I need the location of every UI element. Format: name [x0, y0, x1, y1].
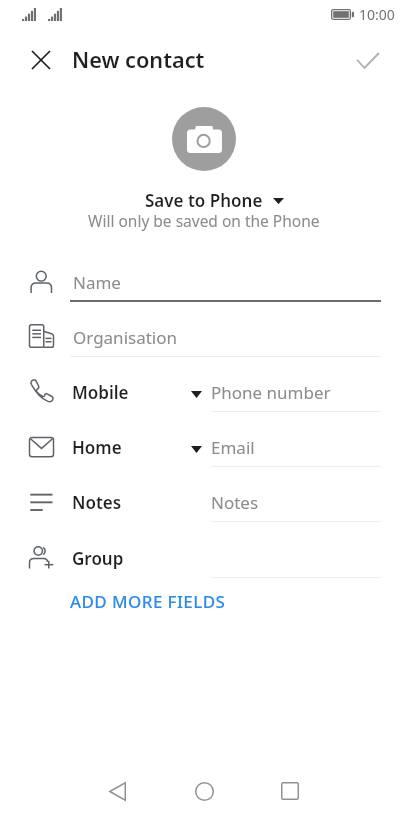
- staticText: ADD MORE FIELDS: [70, 590, 226, 613]
- staticText: Organisation: [73, 326, 178, 349]
- staticText: Email: [211, 436, 255, 459]
- button[interactable]: Recents: [264, 765, 316, 816]
- staticText: Phone number: [211, 381, 331, 404]
- staticText: Name: [73, 271, 121, 294]
- staticText: 10:00: [359, 5, 395, 24]
- button[interactable]: Name: [0, 258, 408, 302]
- button[interactable]: Home: [178, 765, 230, 816]
- button[interactable]: Home: [0, 423, 408, 467]
- staticText: Will only be saved on the Phone: [88, 210, 320, 231]
- staticText: Save to Phone: [145, 189, 263, 212]
- button[interactable]: Close: [22, 41, 60, 79]
- staticText: Notes: [211, 491, 259, 514]
- button[interactable]: Add photo: [172, 107, 236, 171]
- button[interactable]: Save to Phone: [145, 189, 284, 212]
- staticText: New contact: [72, 45, 205, 75]
- button[interactable]: Mobile: [0, 368, 408, 412]
- staticText: Home: [72, 436, 122, 459]
- button[interactable]: Group: [0, 534, 408, 578]
- staticText: Group: [72, 547, 124, 570]
- button[interactable]: Save: [349, 41, 387, 79]
- button[interactable]: Notes: [0, 478, 408, 522]
- button[interactable]: Organisation: [0, 313, 408, 357]
- button[interactable]: ADD MORE FIELDS: [70, 590, 226, 613]
- button[interactable]: Back: [91, 765, 143, 816]
- staticText: Mobile: [72, 381, 129, 404]
- staticText: Notes: [72, 491, 122, 514]
